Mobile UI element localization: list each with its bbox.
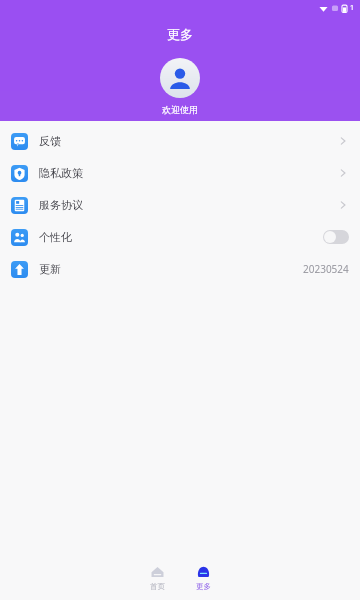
button[interactable]: 个性化 xyxy=(0,221,360,253)
staticText: 1 xyxy=(350,3,355,13)
button[interactable]: 更新 xyxy=(0,253,360,285)
button[interactable]: 反馈 xyxy=(0,125,360,157)
staticText: 更新 xyxy=(39,262,61,276)
staticText: 隐私政策 xyxy=(39,166,83,180)
staticText: 反馈 xyxy=(39,134,61,148)
staticText: 欢迎使用 xyxy=(162,104,198,115)
button[interactable]: 个性化 toggle xyxy=(323,230,349,244)
button[interactable]: Avatar xyxy=(160,58,200,98)
button[interactable]: 更多 xyxy=(186,562,220,600)
button[interactable]: 服务协议 xyxy=(0,189,360,221)
button[interactable]: 隐私政策 xyxy=(0,157,360,189)
staticText: 服务协议 xyxy=(39,198,83,212)
staticText: 更多 xyxy=(196,582,211,591)
staticText: 20230524 xyxy=(303,262,349,276)
button[interactable]: 首页 xyxy=(140,562,174,600)
staticText: 更多 xyxy=(167,26,193,42)
staticText: 首页 xyxy=(150,582,165,591)
staticText: 个性化 xyxy=(39,230,72,244)
